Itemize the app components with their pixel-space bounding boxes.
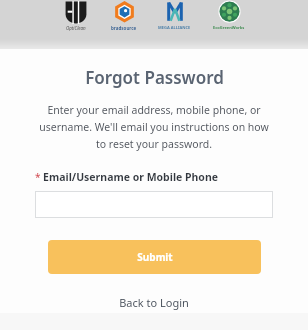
staticText: Forgot Password xyxy=(85,66,224,89)
staticText: Enter your email address, mobile phone, … xyxy=(35,103,273,151)
staticText: EcoGreenWorks xyxy=(213,25,245,30)
button[interactable]: Submit xyxy=(48,240,261,274)
staticText: bradsource xyxy=(111,25,137,31)
staticText: MEGA ALLIANCE xyxy=(158,25,191,30)
button[interactable] xyxy=(35,191,273,218)
staticText: Back to Login xyxy=(119,295,189,310)
staticText: * Email/Username or Mobile Phone xyxy=(35,170,219,184)
button[interactable]: Back to Login xyxy=(111,292,197,313)
staticText: Submit xyxy=(137,250,173,264)
staticText: OptiClean xyxy=(66,25,86,31)
